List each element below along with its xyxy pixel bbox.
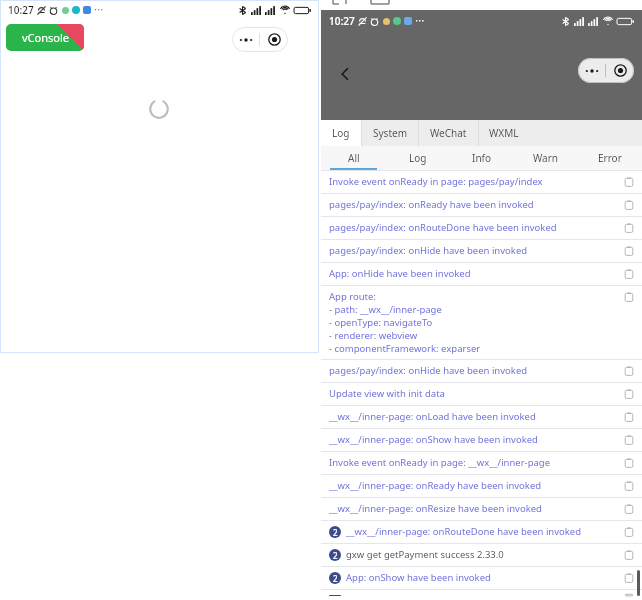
staticText: WXML	[489, 126, 519, 140]
button[interactable]: Copy	[622, 525, 636, 539]
staticText: Invoke event onReady in page: __wx__/inn…	[329, 456, 618, 469]
staticText: ⋯	[94, 4, 104, 16]
staticText: pages/pay/index: onRouteDone have been i…	[329, 221, 618, 234]
button[interactable]: Warn	[514, 146, 578, 170]
staticText: Error	[598, 151, 622, 165]
button[interactable]: System	[361, 120, 418, 146]
staticText: System	[373, 126, 407, 140]
button[interactable]: 2	[329, 594, 636, 596]
button[interactable]: More	[578, 58, 605, 83]
button[interactable]: Update view with init data	[329, 387, 636, 401]
button[interactable]: Copy	[622, 198, 636, 212]
button[interactable]: __wx__/inner-page: onShow have been invo…	[329, 433, 636, 447]
staticText: __wx__/inner-page: onLoad have been invo…	[329, 410, 618, 423]
staticText: __wx__/inner-page: onShow have been invo…	[329, 433, 618, 446]
staticText: vConsole	[22, 30, 69, 45]
button[interactable]: App: onHide have been invoked	[329, 267, 636, 281]
button[interactable]: Copy	[622, 594, 636, 596]
button[interactable]: Log	[386, 146, 450, 170]
staticText: App: onHide have been invoked	[329, 267, 618, 280]
button[interactable]: Copy	[622, 410, 636, 424]
staticText: Warn	[533, 151, 559, 165]
button[interactable]: WXML	[478, 120, 530, 146]
staticText: Log	[409, 151, 427, 165]
staticText: __wx__/inner-page: onRouteDone have been…	[346, 525, 618, 538]
button[interactable]: Invoke event onReady in page: __wx__/inn…	[329, 456, 636, 470]
button[interactable]: App route: - path: __wx__/inner-page - o…	[329, 290, 636, 355]
staticText: 2	[333, 573, 338, 584]
button[interactable]: Log	[321, 120, 361, 146]
button[interactable]: 2	[329, 548, 636, 562]
button[interactable]: Close	[260, 27, 288, 52]
button[interactable]: __wx__/inner-page: onResize have been in…	[329, 502, 636, 516]
button[interactable]: All	[321, 146, 386, 170]
button[interactable]: vConsole	[6, 24, 84, 51]
staticText: 2	[333, 550, 338, 561]
staticText: pages/pay/index: onReady have been invok…	[329, 198, 618, 211]
staticText: Log	[332, 126, 350, 140]
button[interactable]: Copy	[622, 387, 636, 401]
staticText: 10:27	[329, 14, 355, 28]
button[interactable]: Copy	[622, 479, 636, 493]
staticText: WeChat	[430, 126, 467, 140]
staticText: Info	[472, 151, 492, 165]
button[interactable]: Copy	[622, 433, 636, 447]
button[interactable]: Copy	[622, 175, 636, 189]
staticText: ⋯	[415, 15, 425, 27]
button[interactable]: 2	[329, 525, 636, 539]
button[interactable]: Copy	[622, 456, 636, 470]
button[interactable]: Info	[450, 146, 514, 170]
button[interactable]: Error	[578, 146, 642, 170]
button[interactable]: Copy	[622, 502, 636, 516]
staticText: 10:27	[8, 3, 34, 17]
button[interactable]: pages/pay/index: onRouteDone have been i…	[329, 221, 636, 235]
staticText: All	[348, 151, 360, 165]
button[interactable]: __wx__/inner-page: onLoad have been invo…	[329, 410, 636, 424]
button[interactable]: Copy	[622, 290, 636, 304]
button[interactable]: Copy	[622, 571, 636, 585]
button[interactable]: Invoke event onReady in page: pages/pay/…	[329, 175, 636, 189]
staticText: __wx__/inner-page: onReady have been inv…	[329, 479, 618, 492]
button[interactable]: Back	[331, 60, 359, 88]
button[interactable]: pages/pay/index: onReady have been invok…	[329, 198, 636, 212]
button[interactable]: More	[232, 27, 259, 52]
staticText: pages/pay/index: onHide have been invoke…	[329, 244, 618, 257]
staticText: gxw get getPayment success 2.33.0	[346, 548, 618, 561]
staticText: Update view with init data	[329, 387, 618, 400]
staticText: Invoke event onReady in page: pages/pay/…	[329, 175, 618, 188]
button[interactable]: __wx__/inner-page: onReady have been inv…	[329, 479, 636, 493]
staticText: pages/pay/index: onHide have been invoke…	[329, 364, 618, 377]
button[interactable]: WeChat	[418, 120, 478, 146]
button[interactable]: pages/pay/index: onHide have been invoke…	[329, 364, 636, 378]
button[interactable]: Copy	[622, 221, 636, 235]
button[interactable]: Copy	[622, 244, 636, 258]
button[interactable]: pages/pay/index: onHide have been invoke…	[329, 244, 636, 258]
staticText: App route: - path: __wx__/inner-page - o…	[329, 290, 618, 355]
button[interactable]: Copy	[622, 548, 636, 562]
staticText: App: onShow have been invoked	[346, 571, 618, 584]
staticText: 2	[333, 527, 338, 538]
button[interactable]: Copy	[622, 267, 636, 281]
button[interactable]: Close	[606, 58, 634, 83]
button[interactable]: Copy	[622, 364, 636, 378]
staticText: __wx__/inner-page: onResize have been in…	[329, 502, 618, 515]
button[interactable]: 2	[329, 571, 636, 585]
